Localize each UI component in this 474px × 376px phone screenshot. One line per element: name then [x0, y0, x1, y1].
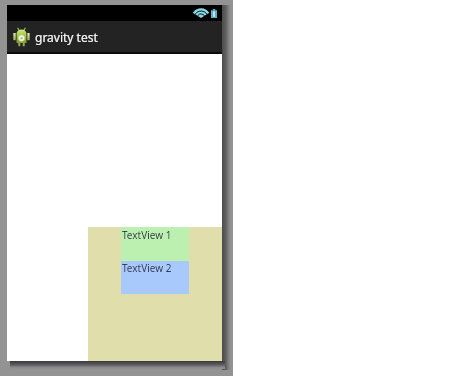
other: Battery — [211, 9, 217, 18]
staticText: TextView 2 — [122, 261, 172, 275]
staticText: gravity test — [35, 29, 98, 45]
other: Wi-Fi signal — [195, 9, 207, 18]
button[interactable]: TextView 1 — [121, 227, 189, 261]
staticText: TextView 1 — [122, 228, 172, 242]
button[interactable]: TextView 2 — [121, 261, 189, 294]
button[interactable]: App icon — [7, 21, 222, 54]
other: App icon — [13, 27, 30, 47]
